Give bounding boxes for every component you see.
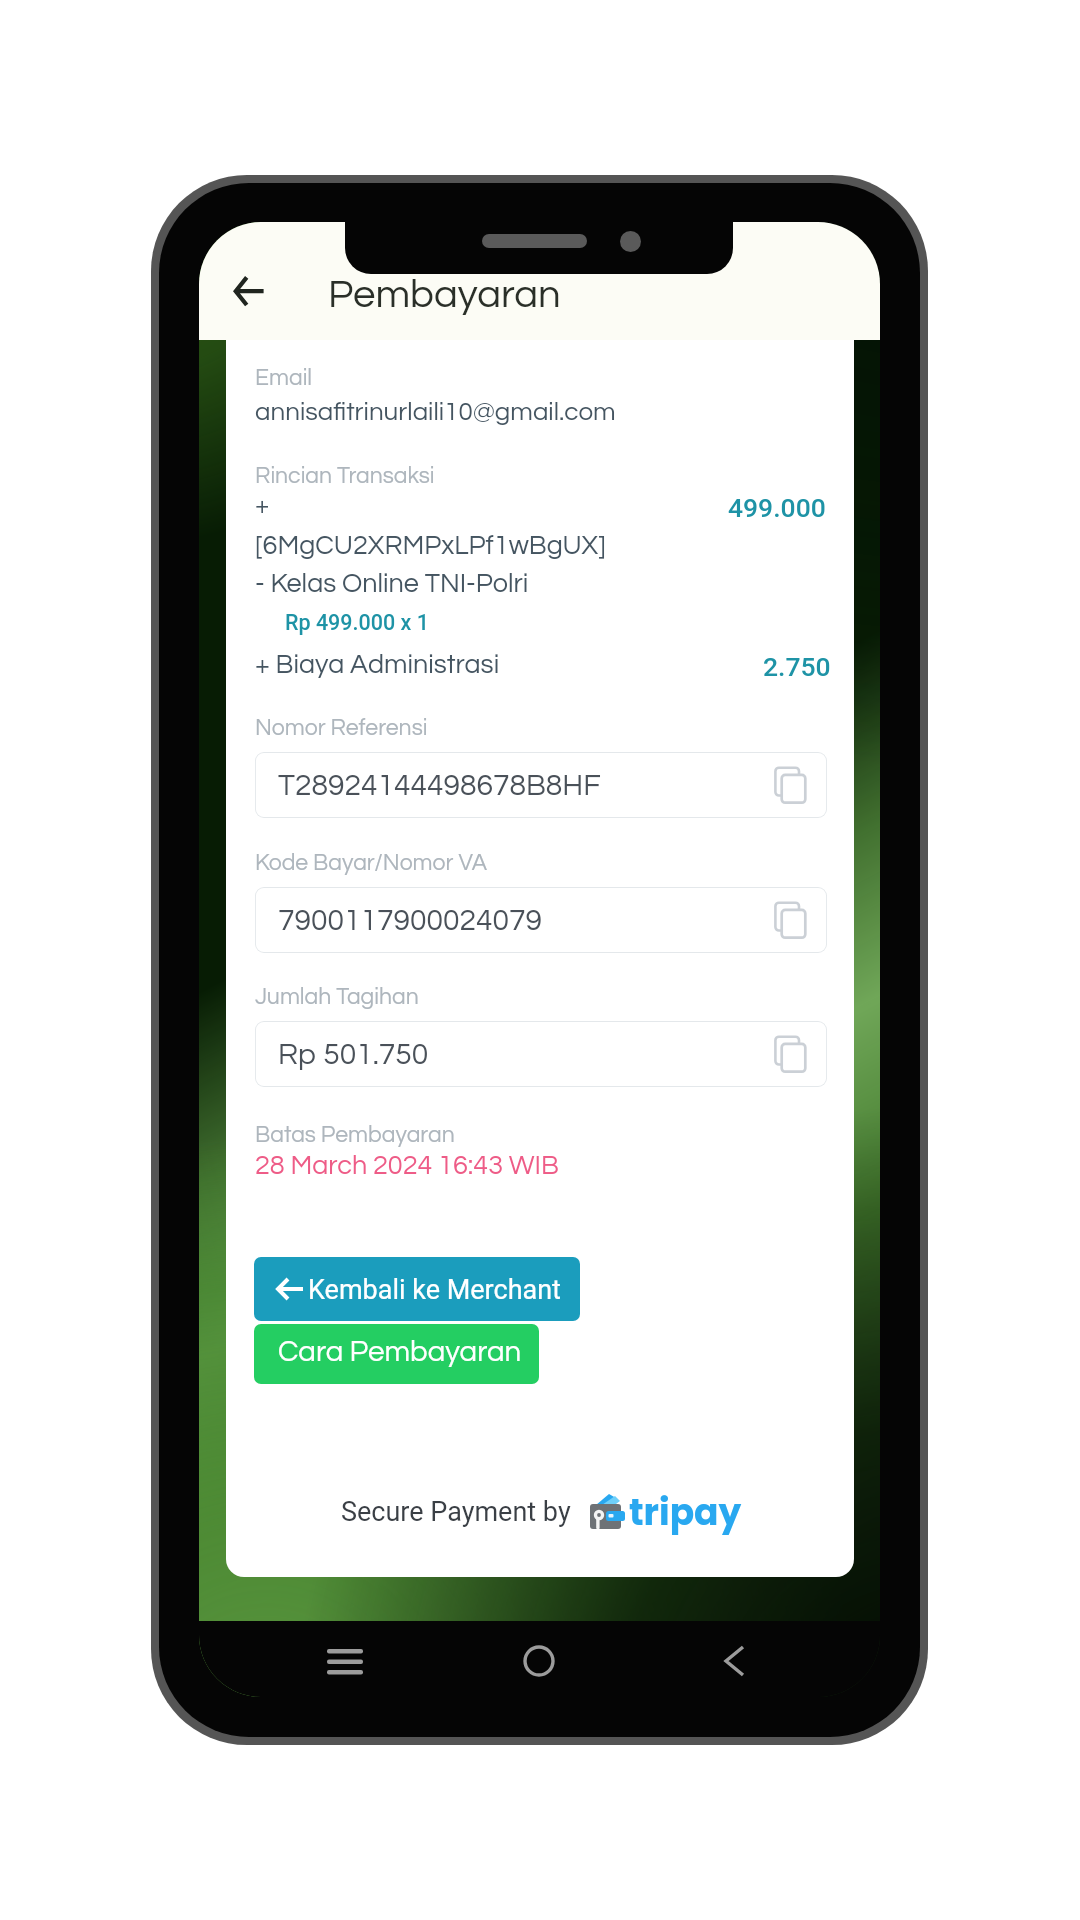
staticText: Jumlah Tagihan <box>255 985 419 1009</box>
staticText: Kembali ke Merchant <box>308 1274 561 1306</box>
staticText: Pembayaran <box>328 274 561 315</box>
button[interactable]: Cara Pembayaran <box>254 1324 539 1384</box>
staticText: + Biaya Administrasi <box>255 651 500 679</box>
button[interactable]: Menu <box>317 1633 373 1689</box>
staticText: Rincian Transaksi <box>255 464 435 488</box>
staticText: 7900117900024079 <box>278 905 542 936</box>
staticText: tripay <box>629 1487 742 1537</box>
button[interactable]: Back <box>213 269 285 313</box>
button[interactable]: Back <box>706 1633 762 1689</box>
staticText: annisafitrinurlaili10@gmail.com <box>255 399 616 426</box>
other: Copy <box>773 767 805 803</box>
staticText: - Kelas Online TNI-Polri <box>255 570 529 598</box>
staticText: T28924144498678B8HF <box>278 770 601 801</box>
staticText: Cara Pembayaran <box>278 1337 522 1367</box>
staticText: Kode Bayar/Nomor VA <box>255 851 488 875</box>
staticText: [6MgCU2XRMPxLPf1wBgUX] <box>255 532 606 560</box>
staticText: 499.000 <box>728 492 826 523</box>
button[interactable]: Rp 501.750 <box>255 1021 827 1087</box>
staticText: Email <box>255 366 313 390</box>
staticText: Rp 501.750 <box>278 1039 429 1070</box>
other: Copy <box>773 902 805 938</box>
button[interactable]: Home <box>511 1633 567 1689</box>
staticText: Rp 499.000 x 1 <box>285 610 429 635</box>
button[interactable]: Kembali ke Merchant <box>254 1257 580 1321</box>
staticText: 2.750 <box>763 651 831 682</box>
button[interactable]: T28924144498678B8HF <box>255 752 827 818</box>
staticText: + <box>255 492 270 519</box>
staticText: Batas Pembayaran <box>255 1123 455 1147</box>
button[interactable]: 7900117900024079 <box>255 887 827 953</box>
staticText: Nomor Referensi <box>255 716 428 740</box>
staticText: 28 March 2024 16:43 WIB <box>255 1152 559 1180</box>
staticText: Secure Payment by <box>341 1496 571 1528</box>
other: Copy <box>773 1036 805 1072</box>
